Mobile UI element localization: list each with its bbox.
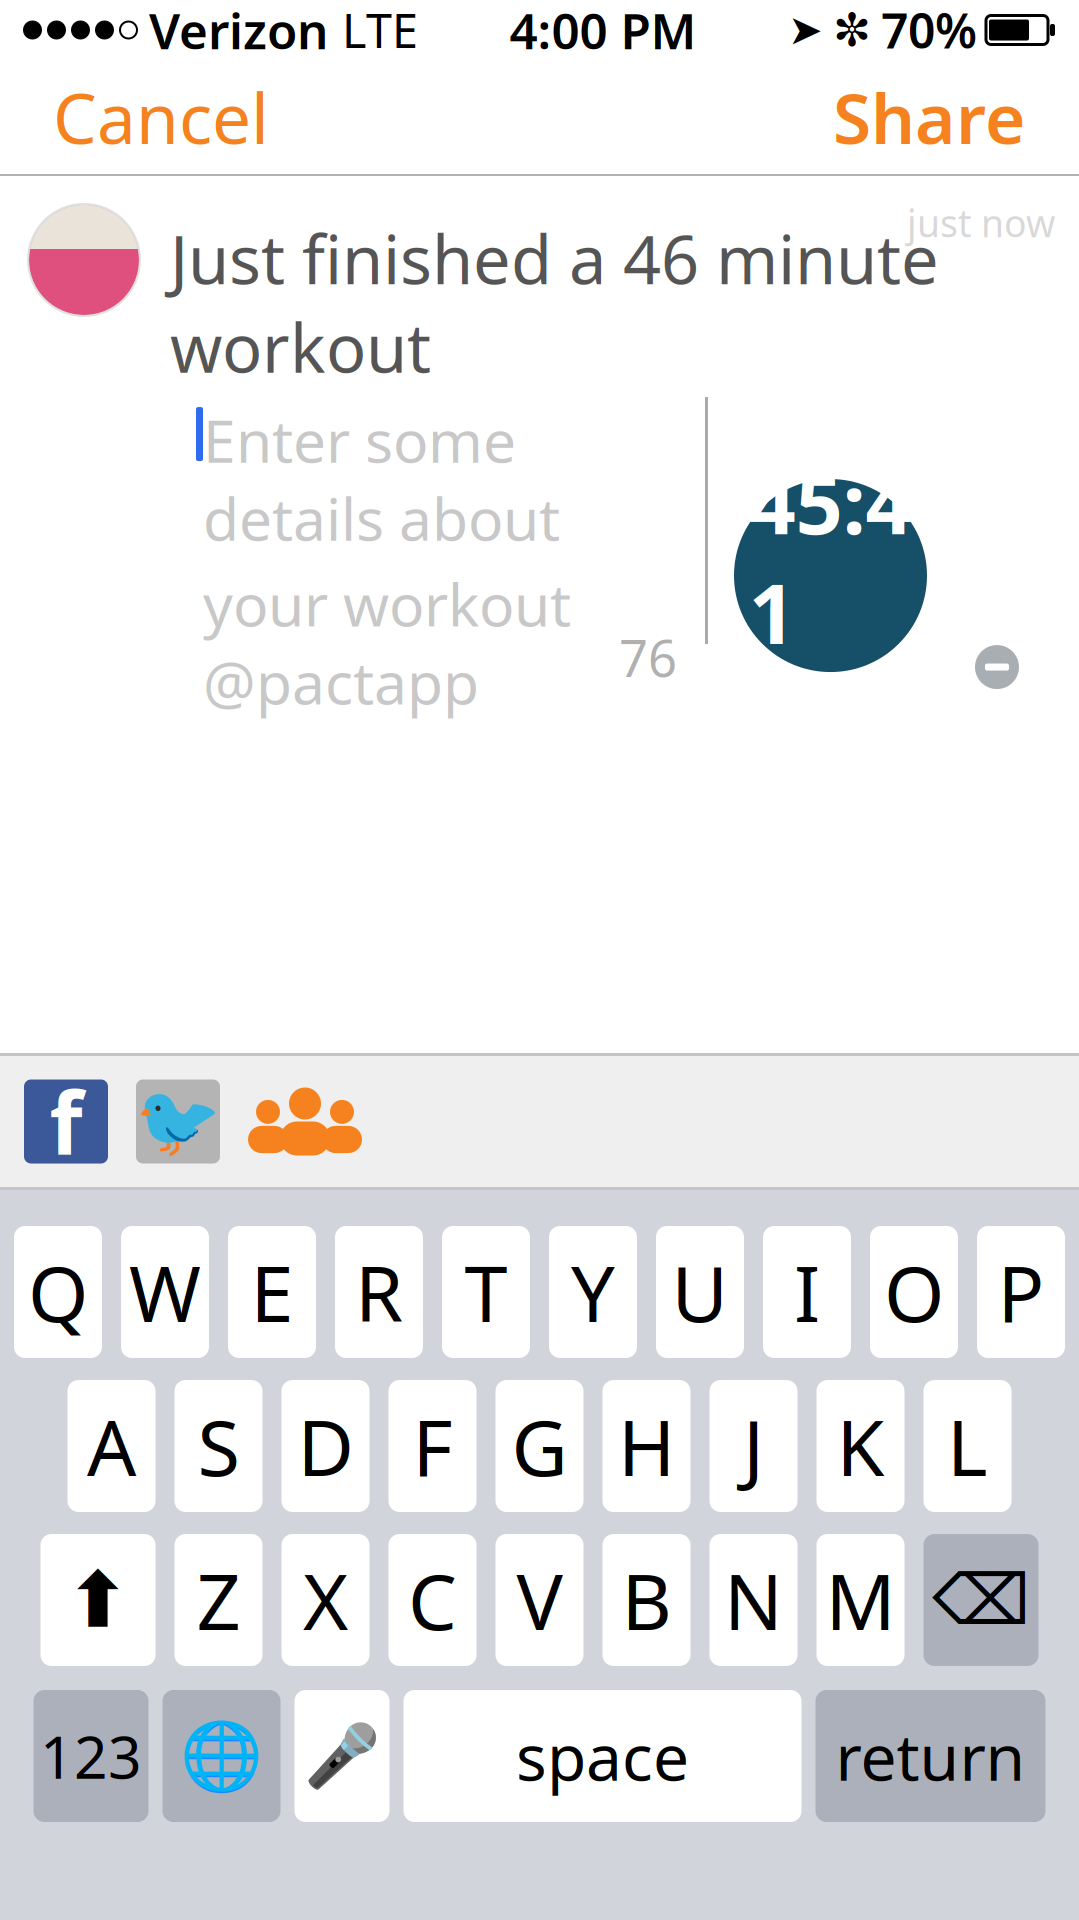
- button[interactable]: B: [602, 1534, 690, 1666]
- staticText: ✼: [833, 4, 871, 56]
- button[interactable]: S: [174, 1380, 262, 1512]
- button[interactable]: O: [870, 1226, 958, 1358]
- button[interactable]: D: [281, 1380, 369, 1512]
- button[interactable]: Share to friends: [248, 1079, 362, 1163]
- staticText: just now: [907, 198, 1055, 248]
- staticText: LTE: [342, 0, 418, 61]
- button[interactable]: Q: [14, 1226, 102, 1358]
- staticText: U: [671, 1241, 728, 1343]
- button[interactable]: Share: [815, 57, 1044, 177]
- staticText: R: [355, 1241, 403, 1343]
- button[interactable]: Delete: [923, 1534, 1038, 1666]
- button[interactable]: T: [442, 1226, 530, 1358]
- staticText: 45:41: [748, 447, 912, 667]
- button[interactable]: Next keyboard: [162, 1690, 280, 1822]
- staticText: Just finished a 46 minute workout: [170, 214, 939, 391]
- button[interactable]: return: [815, 1690, 1045, 1822]
- staticText: B: [621, 1549, 671, 1651]
- button[interactable]: 123: [33, 1690, 148, 1822]
- staticText: N: [724, 1549, 783, 1651]
- button[interactable]: R: [335, 1226, 423, 1358]
- button[interactable]: Share to Facebook: [24, 1065, 108, 1178]
- staticText: F: [412, 1395, 452, 1497]
- staticText: P: [997, 1241, 1044, 1343]
- staticText: Q: [28, 1241, 88, 1343]
- staticText: f: [49, 1065, 82, 1178]
- staticText: X: [303, 1549, 348, 1651]
- staticText: M: [825, 1549, 895, 1651]
- staticText: W: [129, 1241, 201, 1343]
- button[interactable]: L: [923, 1380, 1011, 1512]
- staticText: E: [250, 1241, 293, 1343]
- button[interactable]: H: [602, 1380, 690, 1512]
- button[interactable]: Remove workout card: [975, 645, 1019, 689]
- staticText: O: [884, 1241, 944, 1343]
- staticText: G: [511, 1395, 567, 1497]
- staticText: your workout @pactapp: [203, 565, 571, 721]
- staticText: 123: [40, 1717, 142, 1795]
- button[interactable]: P: [977, 1226, 1065, 1358]
- button[interactable]: J: [709, 1380, 797, 1512]
- staticText: D: [297, 1395, 353, 1497]
- staticText: return: [835, 1713, 1025, 1798]
- staticText: K: [836, 1395, 884, 1497]
- button[interactable]: Dictation: [294, 1690, 389, 1822]
- button[interactable]: I: [763, 1226, 851, 1358]
- button[interactable]: M: [816, 1534, 904, 1666]
- staticText: C: [408, 1549, 457, 1651]
- staticText: V: [516, 1549, 562, 1651]
- staticText: 76: [619, 624, 677, 691]
- staticText: L: [947, 1395, 988, 1497]
- button[interactable]: Y: [549, 1226, 637, 1358]
- staticText: Z: [196, 1549, 240, 1651]
- button[interactable]: U: [656, 1226, 744, 1358]
- button[interactable]: F: [388, 1380, 476, 1512]
- button[interactable]: G: [495, 1380, 583, 1512]
- staticText: Y: [571, 1241, 615, 1343]
- staticText: min. workout: [765, 667, 895, 748]
- staticText: J: [743, 1395, 764, 1497]
- button[interactable]: V: [495, 1534, 583, 1666]
- button[interactable]: Cancel: [35, 57, 287, 177]
- button[interactable]: K: [816, 1380, 904, 1512]
- button[interactable]: Share to Twitter: [135, 1079, 221, 1163]
- staticText: I: [794, 1241, 820, 1343]
- button[interactable]: space: [403, 1690, 801, 1822]
- staticText: 🎤: [304, 1721, 380, 1791]
- button[interactable]: Z: [174, 1534, 262, 1666]
- button[interactable]: N: [709, 1534, 797, 1666]
- staticText: T: [464, 1241, 507, 1343]
- staticText: space: [516, 1713, 689, 1798]
- button[interactable]: A: [67, 1380, 155, 1512]
- staticText: 4:00 PM: [509, 0, 696, 63]
- staticText: 70%: [881, 0, 977, 62]
- staticText: ⌫: [932, 1561, 1030, 1639]
- button[interactable]: W: [121, 1226, 209, 1358]
- button[interactable]: C: [388, 1534, 476, 1666]
- staticText: Verizon: [149, 0, 328, 63]
- staticText: H: [618, 1395, 675, 1497]
- button[interactable]: Shift: [40, 1534, 155, 1666]
- staticText: Cancel: [53, 71, 269, 163]
- button[interactable]: X: [281, 1534, 369, 1666]
- staticText: ⬆: [65, 1556, 130, 1644]
- staticText: Share: [833, 71, 1026, 163]
- button[interactable]: E: [228, 1226, 316, 1358]
- staticText: S: [197, 1395, 239, 1497]
- staticText: ➤: [788, 6, 823, 53]
- staticText: A: [87, 1395, 136, 1497]
- staticText: Enter some details about: [203, 401, 560, 557]
- staticText: 🌐: [180, 1718, 263, 1794]
- staticText: 🐦: [135, 1082, 221, 1161]
